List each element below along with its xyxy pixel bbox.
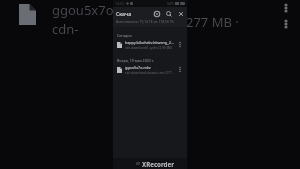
button[interactable]: More options <box>175 39 185 50</box>
button[interactable]: Close <box>176 9 185 18</box>
staticText: Вместимость: 75,16 ГБ из 118,56 ГБ <box>116 19 174 24</box>
staticText: ggou5x7o.mkv <box>125 65 151 70</box>
button[interactable]: Search <box>164 9 173 18</box>
staticText: cdn-download.ubvadu.com (277 МБ) · <box>125 71 174 75</box>
staticText: ggou5x7o. <box>52 1 114 19</box>
staticText: happy.b4xchzkv.kitweng_2.8.4.apk <box>125 40 174 45</box>
staticText: cdn-downloadt1.cydns (2,96 МБ) <box>125 46 173 50</box>
staticText: 14:52 <box>115 1 124 6</box>
staticText: Скачанные файлы <box>116 10 134 17</box>
staticText: Сегодня <box>117 33 132 38</box>
button[interactable]: ggou5x7o.mkv <box>113 64 187 75</box>
button[interactable]: More options <box>281 18 291 30</box>
staticText: Вчера, 19 мая 2023 г. <box>117 58 155 63</box>
staticText: cdn-downloa <box>52 20 114 38</box>
staticText: 277 MB · <box>186 13 239 31</box>
button[interactable]: More options <box>175 64 185 75</box>
staticText: XRecorder <box>142 160 174 168</box>
button[interactable]: More options <box>281 2 291 14</box>
staticText: 68% <box>167 1 174 6</box>
button[interactable]: Settings <box>152 9 161 18</box>
button[interactable]: happy.b4xchzkv.kitweng_2.8.4.apk <box>113 39 187 50</box>
